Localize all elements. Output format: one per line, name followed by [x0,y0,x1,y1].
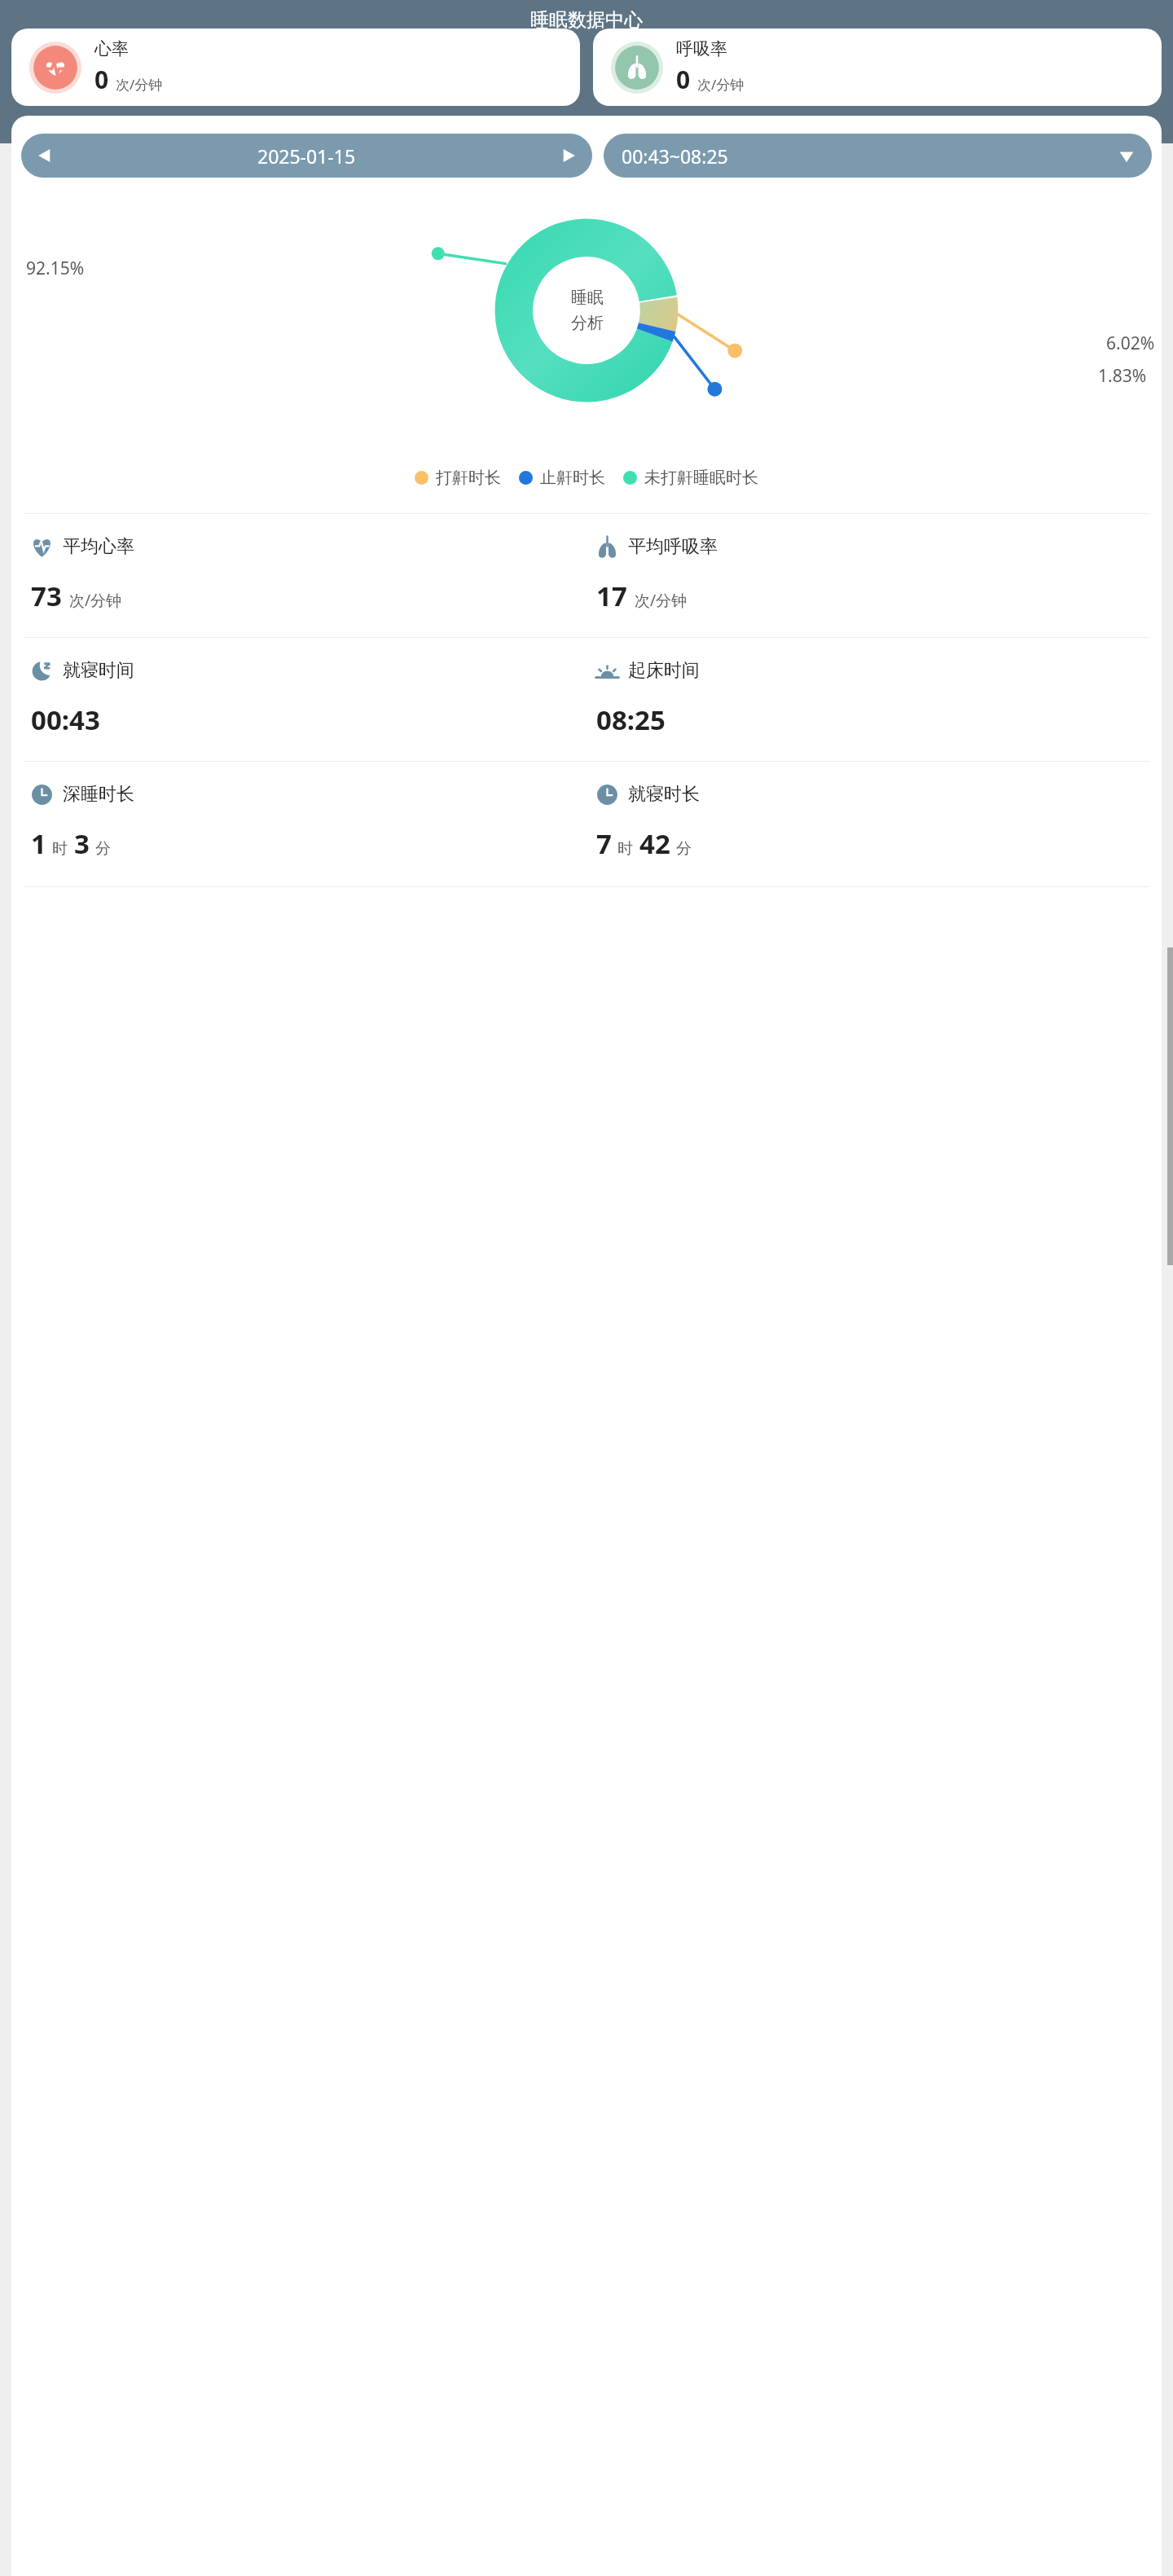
staticText: 平均心率 [63,535,134,558]
staticText: 止鼾时长 [540,468,605,488]
button[interactable]: 心率 [11,29,580,106]
staticText: 17 [596,578,627,614]
staticText: 42 [639,825,670,862]
staticText: 时 [52,839,68,859]
staticText: 1 [31,825,46,862]
staticText: 0 [94,63,109,96]
staticText: 睡眠数据中心 [530,8,643,32]
staticText: 73 [31,578,62,614]
staticText: 平均呼吸率 [628,535,718,558]
staticText: 次/分钟 [697,75,745,94]
button[interactable]: 00:43~08:25 [604,134,1152,178]
staticText: 2025-01-15 [257,143,356,169]
staticText: 就寝时长 [628,783,700,806]
staticText: 就寝时间 [63,659,134,682]
staticText: 分析 [571,313,604,333]
staticText: 心率 [94,38,129,59]
staticText: 6.02% [1106,332,1155,355]
staticText: 92.15% [26,257,85,280]
staticText: 次/分钟 [69,590,122,611]
other: Next day [560,147,578,165]
staticText: 分 [676,839,692,859]
button[interactable]: 呼吸率 [593,29,1162,106]
staticText: 7 [596,825,612,862]
staticText: 呼吸率 [676,38,727,59]
staticText: 深睡时长 [63,783,134,806]
staticText: 08:25 [596,701,666,738]
staticText: 睡眠 [571,288,604,308]
staticText: 起床时间 [628,659,700,682]
staticText: 1.83% [1098,364,1147,388]
staticText: 0 [676,63,691,96]
staticText: 次/分钟 [116,75,163,94]
staticText: 次/分钟 [635,590,688,611]
other: Select range [1118,147,1136,165]
staticText: 00:43 [31,701,100,738]
staticText: 3 [74,825,90,862]
staticText: 分 [95,839,111,859]
staticText: 未打鼾睡眠时长 [644,468,758,488]
staticText: 时 [617,839,633,859]
staticText: 00:43~08:25 [622,143,728,169]
staticText: 打鼾时长 [436,468,501,488]
button[interactable]: Previous day [21,134,592,178]
other: Previous day [36,147,54,165]
